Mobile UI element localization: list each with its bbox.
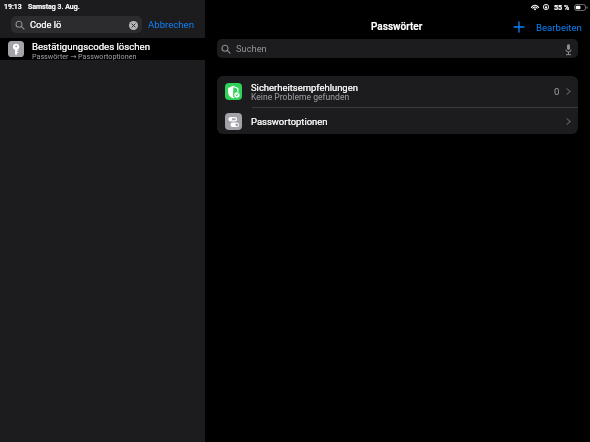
button[interactable]: Suche löschen [127,19,139,31]
button[interactable]: Bestätigungscodes löschen [0,38,205,60]
button[interactable]: Code lö [11,16,142,33]
button[interactable]: Passwort hinzufügen [511,19,527,35]
staticText: Abbrechen [148,19,194,30]
button[interactable]: Passwortoptionen [217,108,578,134]
staticText: Passwörter [371,21,423,33]
staticText: Passwortoptionen [251,116,328,127]
button[interactable]: Spracheingabe [562,43,574,55]
staticText: Suchen [236,43,267,54]
staticText: Passwörter → Passwortoptionen [32,52,137,60]
staticText: Code lö [30,19,62,30]
staticText: Bestätigungscodes löschen [32,41,150,52]
staticText: Sicherheitsempfehlungen [251,82,358,93]
staticText: Samstag 3. Aug. [28,3,80,11]
staticText: 55 % [554,3,570,11]
button[interactable]: Abbrechen [148,16,194,33]
staticText: Bearbeiten [536,22,582,33]
staticText: 0 [554,86,560,97]
button[interactable]: Suchen [217,39,578,58]
staticText: Keine Probleme gefunden [251,92,350,102]
button[interactable]: Bearbeiten [536,17,582,37]
staticText: 19:13 [4,3,22,11]
button[interactable]: Sicherheitsempfehlungen [217,76,578,107]
